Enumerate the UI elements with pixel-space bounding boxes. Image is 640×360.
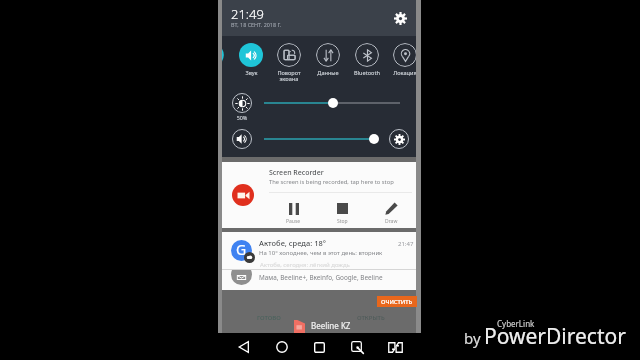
button[interactable]: Локация [386,36,416,77]
button[interactable]: Back [231,334,257,360]
button[interactable]: ОТКРЫТЬ [357,314,385,322]
button[interactable]: Звук [232,36,270,77]
button[interactable]: ГОТОВО [257,314,281,322]
staticText: 50% [235,114,249,121]
staticText: Beeline KZ [311,320,351,331]
staticText: Данные [317,69,339,77]
button[interactable]: Мама, Beeline+, Вкеinfo, Google, Beeline [222,270,416,290]
button[interactable]: Sound settings [389,129,409,149]
staticText: Локация [393,69,416,77]
staticText: Stop [337,218,348,225]
staticText: The screen is being recorded, tap here t… [269,178,394,186]
staticText: 21:47 [398,240,414,248]
button[interactable]: G [222,232,416,269]
staticText: Draw [385,218,398,225]
staticText: by [464,328,481,348]
button[interactable]: Brightness [232,93,252,113]
staticText: CyberLink [497,318,535,329]
staticText: ОЧИСТИТЬ [381,298,413,306]
staticText: PowerDirector [484,322,626,351]
staticText: Актобе, среда: 18° [259,238,327,248]
staticText: Звук [245,69,258,77]
staticText: На 10° холоднее, чем в этот день: вторни… [259,249,383,257]
button[interactable]: Settings [391,9,409,27]
button[interactable]: Split screen [382,334,408,360]
staticText: Screen Recorder [269,168,324,178]
button[interactable]: Stop [318,200,366,228]
staticText: Поворот экрана [277,69,301,81]
button[interactable]: Volume [232,129,252,149]
button[interactable]: ОЧИСТИТЬ [377,296,417,307]
button[interactable]: Bluetooth [348,36,386,77]
button[interactable]: Screen Recorder [222,162,416,228]
staticText: Актобе, сегодня: лёгкий дождь [260,261,350,269]
button[interactable]: Recents [306,334,332,360]
button[interactable]: Screenshot [344,334,370,360]
staticText: Bluetooth [354,69,380,77]
staticText: ВТ, 18 СЕНТ. 2018 Г. [231,21,282,28]
staticText: Мама, Beeline+, Вкеinfo, Google, Beeline [259,273,383,282]
button[interactable]: Поворот экрана [270,36,308,81]
button[interactable]: Данные [309,36,347,77]
staticText: G [236,240,247,259]
button[interactable]: Pause [269,200,317,228]
staticText: Pause [286,218,301,225]
button[interactable]: Draw [367,200,415,228]
staticText: 21:49 [231,5,264,23]
button[interactable]: Home [269,334,295,360]
